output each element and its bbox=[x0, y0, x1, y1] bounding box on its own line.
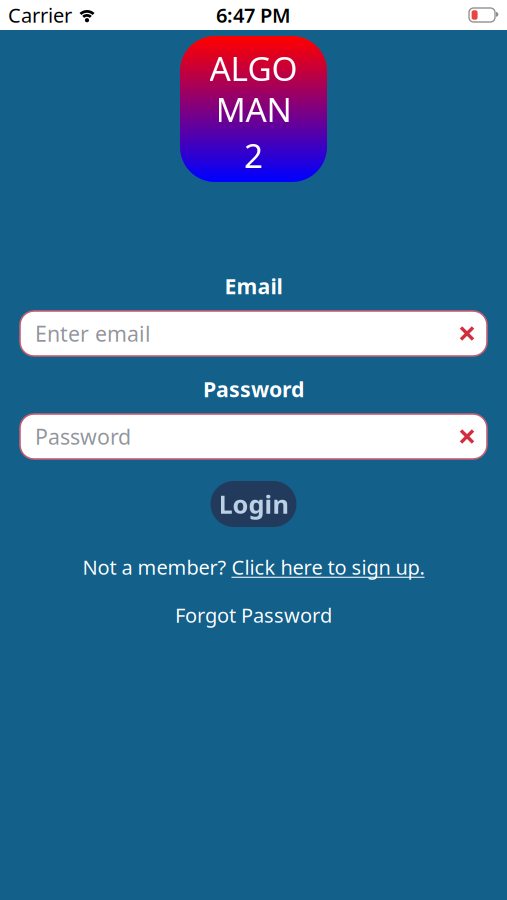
button[interactable]: Forgot Password bbox=[175, 604, 332, 626]
staticText: ALGO bbox=[209, 46, 297, 90]
staticText: Login bbox=[218, 487, 288, 521]
staticText: Password bbox=[203, 375, 304, 403]
staticText: Forgot Password bbox=[175, 602, 332, 628]
staticText: MAN bbox=[215, 87, 291, 131]
button[interactable]: Not a member? Click here to sign up. bbox=[82, 556, 424, 578]
staticText: 2 bbox=[244, 133, 263, 177]
button[interactable]: Clear text bbox=[453, 319, 481, 347]
staticText: Email bbox=[224, 272, 282, 300]
button[interactable]: Login bbox=[210, 481, 296, 527]
staticText: Enter email bbox=[35, 319, 151, 348]
staticText: Carrier bbox=[8, 2, 72, 28]
button[interactable]: Clear text bbox=[453, 422, 481, 450]
staticText: Password bbox=[35, 422, 131, 451]
staticText: Not a member? Click here to sign up. bbox=[82, 554, 424, 580]
staticText: 6:47 PM bbox=[216, 2, 291, 28]
